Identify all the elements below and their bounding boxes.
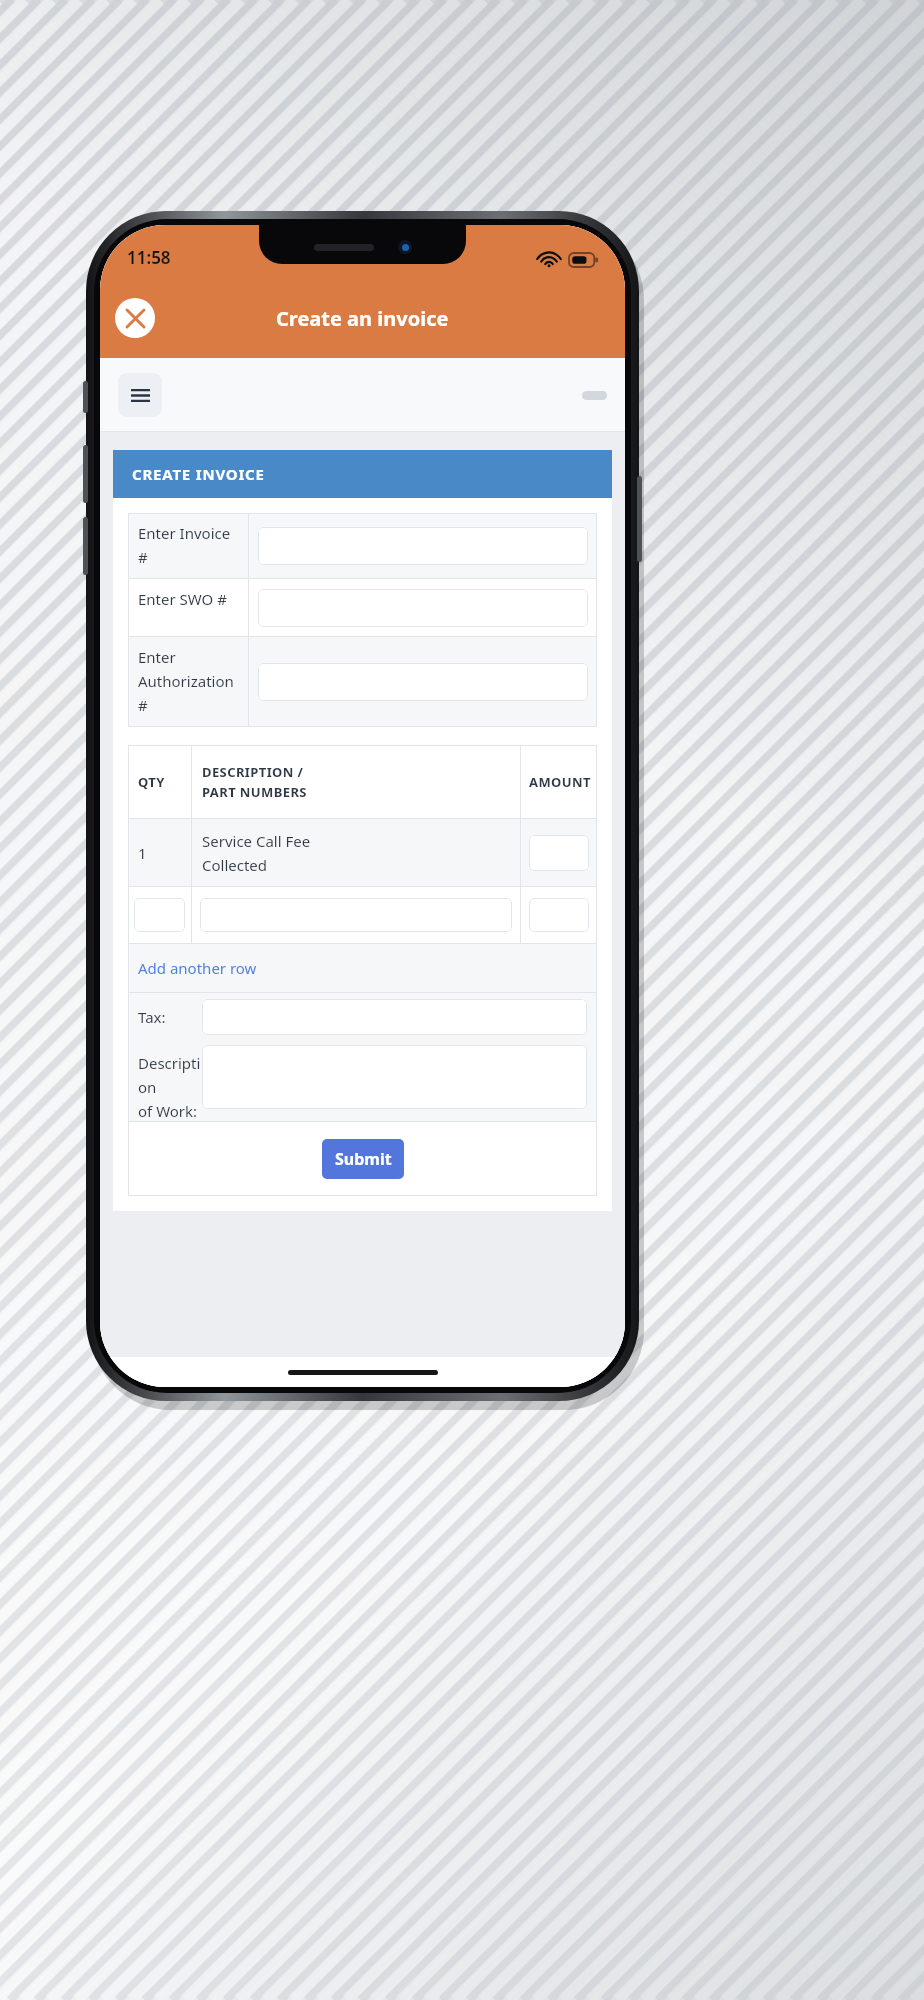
staticText: Enter Authorization # — [138, 647, 234, 715]
button[interactable]: Input field — [258, 589, 588, 627]
staticText: DESCRIPTION / PART NUMBERS — [202, 763, 307, 801]
staticText: 1 — [138, 843, 147, 863]
staticText: 11:58 — [127, 246, 171, 269]
staticText: Create an invoice — [276, 305, 449, 332]
button[interactable]: Input field — [258, 663, 588, 701]
staticText: Description of Work: — [138, 1053, 202, 1121]
button[interactable]: Add another row — [128, 944, 597, 992]
button[interactable]: Input field — [200, 898, 512, 932]
staticText: Enter SWO # — [138, 589, 227, 609]
staticText: QTY — [138, 773, 165, 791]
button[interactable]: Input field — [529, 898, 589, 932]
button[interactable]: Menu — [118, 373, 162, 417]
button[interactable]: Input field — [202, 1045, 587, 1109]
staticText: Service Call Fee Collected — [202, 831, 311, 875]
staticText: CREATE INVOICE — [132, 464, 265, 484]
button[interactable]: Close — [115, 298, 155, 338]
button[interactable]: Input field — [202, 999, 587, 1035]
staticText: Enter Invoice # — [138, 523, 231, 567]
button[interactable]: Input field — [529, 835, 589, 871]
button[interactable]: Input field — [258, 527, 588, 565]
staticText: AMOUNT — [529, 773, 591, 791]
staticText: Submit — [335, 1148, 392, 1170]
button[interactable]: Submit — [322, 1139, 404, 1179]
staticText: Tax: — [138, 1007, 166, 1027]
button[interactable]: Input field — [134, 898, 185, 932]
staticText: Add another row — [138, 958, 257, 978]
